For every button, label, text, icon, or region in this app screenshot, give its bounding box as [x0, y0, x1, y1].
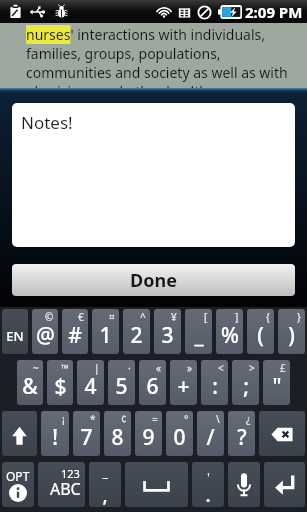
button[interactable]: ^: [123, 309, 150, 354]
staticText: <: [218, 361, 224, 375]
button[interactable]: }: [278, 309, 305, 354]
staticText: °: [184, 412, 189, 426]
staticText: *: [90, 412, 96, 426]
staticText: ': [207, 468, 210, 486]
staticText: €: [78, 310, 84, 324]
staticText: ¿: [246, 412, 251, 426]
staticText: ABC: [50, 478, 81, 500]
button[interactable]: OPT: [2, 462, 34, 507]
staticText: 4: [84, 372, 97, 401]
button[interactable]: Notes!: [12, 103, 295, 247]
staticText: >: [249, 361, 255, 375]
staticText: 6: [146, 372, 159, 401]
staticText: Done: [130, 268, 177, 293]
button[interactable]: Backspace: [259, 411, 305, 456]
staticText: ~: [33, 361, 39, 375]
staticText: 5: [115, 372, 128, 401]
button[interactable]: Done: [12, 264, 295, 296]
button[interactable]: [: [185, 309, 212, 354]
staticText: +: [177, 372, 190, 401]
staticText: ¡: [62, 412, 65, 426]
button[interactable]: *: [73, 411, 100, 456]
staticText: [: [204, 310, 208, 324]
button[interactable]: EN: [2, 309, 28, 354]
staticText: £: [280, 361, 286, 375]
staticText: 3: [161, 321, 174, 350]
staticText: ·: [128, 361, 131, 375]
button[interactable]: »: [170, 360, 197, 405]
staticText: OPT: [6, 468, 30, 484]
staticText: =: [152, 412, 158, 426]
button[interactable]: ~: [17, 360, 43, 405]
button[interactable]: {: [247, 309, 274, 354]
staticText: 123: [61, 466, 80, 481]
staticText: .: [205, 482, 211, 507]
staticText: 7: [80, 423, 93, 452]
staticText: ^: [140, 310, 146, 324]
staticText: (: [257, 321, 264, 350]
staticText: $: [54, 372, 67, 401]
staticText: 0: [173, 423, 186, 452]
button[interactable]: ©: [32, 309, 58, 354]
staticText: ;: [243, 372, 249, 401]
staticText: /: [206, 423, 215, 452]
button[interactable]: °: [166, 411, 193, 456]
staticText: &: [22, 372, 38, 401]
button[interactable]: Enter: [264, 462, 305, 507]
staticText: #: [68, 321, 82, 350]
staticText: ™: [61, 361, 69, 375]
button[interactable]: ¡: [41, 411, 69, 456]
button[interactable]: |: [77, 360, 104, 405]
staticText: ": [272, 372, 282, 401]
button[interactable]: Shift: [2, 411, 37, 456]
staticText: Notes!: [21, 111, 73, 134]
button[interactable]: >: [232, 360, 259, 405]
staticText: ¤: [109, 310, 115, 324]
button[interactable]: 123: [38, 462, 85, 507]
staticText: _: [194, 321, 204, 350]
staticText: \: [216, 412, 220, 426]
button[interactable]: £: [263, 360, 290, 405]
button[interactable]: Voice input: [228, 462, 260, 507]
staticText: 2: [130, 321, 143, 350]
staticText: 9: [142, 423, 155, 452]
staticText: ]: [235, 310, 239, 324]
staticText: 1: [99, 321, 112, 350]
button[interactable]: ¥: [154, 309, 181, 354]
staticText: 8: [111, 423, 124, 452]
staticText: 2:09 PM: [245, 2, 303, 22]
staticText: :: [212, 372, 218, 401]
button[interactable]: Space: [125, 462, 188, 507]
button[interactable]: ]: [216, 309, 243, 354]
staticText: ¥: [171, 310, 177, 324]
button[interactable]: ¿: [228, 411, 255, 456]
staticText: nurses' interactions with individuals, f…: [26, 25, 301, 88]
staticText: –: [102, 468, 109, 486]
button[interactable]: ·: [108, 360, 135, 405]
button[interactable]: €: [62, 309, 88, 354]
button[interactable]: ™: [47, 360, 73, 405]
staticText: !: [52, 423, 58, 452]
staticText: {: [266, 310, 270, 324]
button[interactable]: <: [201, 360, 228, 405]
staticText: EN: [6, 327, 24, 345]
button[interactable]: ¢: [104, 411, 131, 456]
staticText: @: [36, 321, 55, 350]
staticText: »: [187, 361, 193, 375]
button[interactable]: ': [192, 462, 224, 507]
staticText: ): [288, 321, 295, 350]
staticText: }: [297, 310, 301, 324]
button[interactable]: –: [89, 462, 121, 507]
button[interactable]: =: [135, 411, 162, 456]
button[interactable]: ¤: [92, 309, 119, 354]
button[interactable]: \: [197, 411, 224, 456]
button[interactable]: «: [139, 360, 166, 405]
staticText: ©: [45, 310, 54, 324]
staticText: |: [94, 361, 100, 375]
staticText: ¢: [121, 412, 127, 426]
staticText: ?: [237, 423, 247, 452]
staticText: ,: [102, 482, 108, 507]
staticText: «: [156, 361, 162, 375]
staticText: %: [221, 321, 239, 350]
